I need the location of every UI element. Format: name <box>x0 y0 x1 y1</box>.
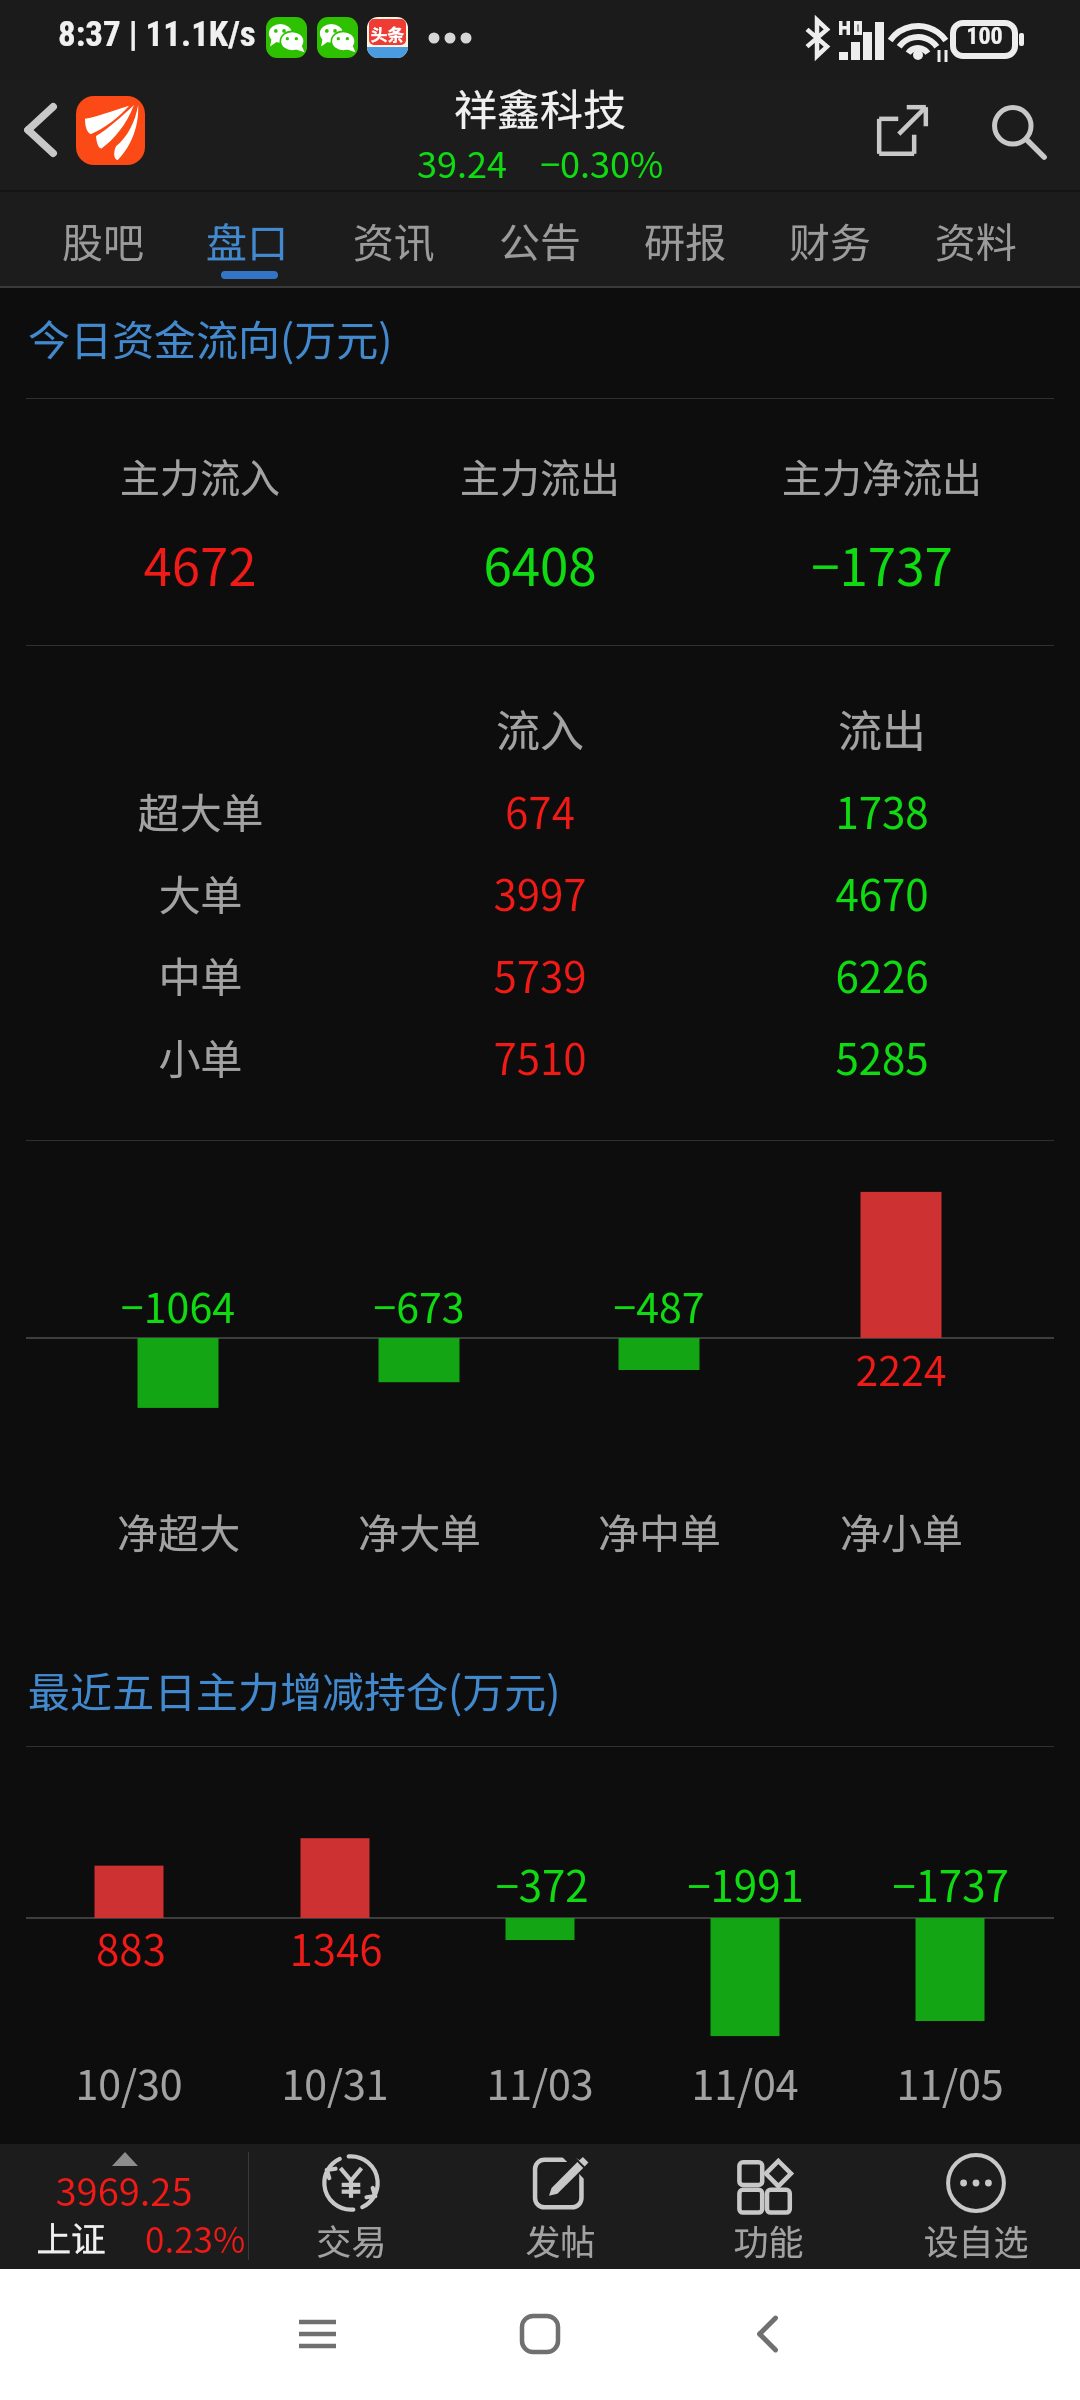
staticText: 研报 <box>644 210 726 269</box>
staticText: 8:37 | 11.1K/s <box>58 14 256 55</box>
staticText: −1991 <box>687 1853 804 1914</box>
staticText: −673 <box>373 1275 465 1334</box>
button[interactable] <box>247 2144 455 2269</box>
staticText: 祥鑫科技 <box>454 76 626 138</box>
button[interactable]: Home <box>487 2289 592 2379</box>
button[interactable] <box>0 2144 248 2269</box>
button[interactable]: 财务 <box>760 192 900 287</box>
staticText: 主力流入 <box>120 447 280 505</box>
staticText: 最近五日主力增减持仓(万元) <box>28 1659 561 1720</box>
button[interactable]: 资讯 <box>324 192 464 287</box>
staticText: 11/05 <box>896 2052 1004 2111</box>
staticText: −487 <box>613 1275 705 1334</box>
staticText: 100 <box>966 22 1003 50</box>
staticText: 1346 <box>289 1917 383 1978</box>
staticText: 39.24 <box>417 136 507 178</box>
staticText: 883 <box>96 1917 166 1978</box>
staticText: 674 <box>505 780 575 841</box>
button[interactable]: 资料 <box>906 192 1046 287</box>
staticText: 主力流出 <box>460 447 620 505</box>
button[interactable] <box>456 2144 664 2269</box>
staticText: 资料 <box>935 210 1017 269</box>
staticText: 净超大 <box>117 1501 240 1560</box>
staticText: 净中单 <box>598 1501 721 1560</box>
staticText: 10/31 <box>281 2052 389 2111</box>
staticText: 5739 <box>493 944 587 1005</box>
staticText: 2224 <box>855 1338 947 1397</box>
staticText: 3969.25 <box>55 2162 193 2217</box>
staticText: 11/03 <box>486 2052 594 2111</box>
staticText: 11/04 <box>691 2052 799 2111</box>
staticText: 流入 <box>496 696 584 760</box>
staticText: −1064 <box>121 1275 235 1334</box>
staticText: 1738 <box>835 780 929 841</box>
staticText: 交易 <box>316 2214 387 2265</box>
staticText: 超大单 <box>137 780 264 841</box>
button[interactable]: Back <box>2 74 78 186</box>
staticText: −1737 <box>892 1853 1009 1914</box>
staticText: 上证 <box>36 2211 107 2262</box>
staticText: 5285 <box>835 1026 929 1087</box>
staticText: 股吧 <box>62 210 144 269</box>
staticText: 小单 <box>158 1026 243 1087</box>
staticText: −0.30% <box>540 136 664 178</box>
staticText: 主力净流出 <box>782 447 982 505</box>
staticText: 7510 <box>493 1026 587 1087</box>
staticText: 6226 <box>835 944 929 1005</box>
staticText: 公告 <box>499 210 581 269</box>
staticText: 头条 <box>370 21 405 46</box>
button[interactable]: Back <box>715 2289 820 2379</box>
staticText: 0.23% <box>145 2212 246 2263</box>
staticText: 6408 <box>483 527 597 601</box>
staticText: 发帖 <box>525 2214 596 2265</box>
staticText: −372 <box>495 1853 589 1914</box>
staticText: 盘口 <box>206 210 288 269</box>
button[interactable] <box>872 2144 1080 2269</box>
button[interactable] <box>664 2144 872 2269</box>
button[interactable]: 股吧 <box>33 192 173 287</box>
staticText: 设自选 <box>923 2214 1029 2265</box>
staticText: 4672 <box>143 527 257 601</box>
staticText: 功能 <box>733 2214 804 2265</box>
button[interactable]: Recents <box>265 2289 370 2379</box>
staticText: 大单 <box>158 862 243 923</box>
staticText: 资讯 <box>353 210 435 269</box>
staticText: 净小单 <box>840 1501 963 1560</box>
staticText: 净大单 <box>358 1501 481 1560</box>
button[interactable]: 研报 <box>615 192 755 287</box>
staticText: 中单 <box>158 944 243 1005</box>
staticText: 3997 <box>493 862 587 923</box>
staticText: −1737 <box>811 527 953 601</box>
staticText: 财务 <box>789 210 871 269</box>
staticText: 4670 <box>835 862 929 923</box>
button[interactable]: Search <box>968 75 1068 187</box>
button[interactable]: 公告 <box>470 192 610 287</box>
staticText: 流出 <box>838 696 926 760</box>
button[interactable]: 盘口 <box>177 192 317 287</box>
button[interactable]: Share <box>852 74 952 186</box>
staticText: 今日资金流向(万元) <box>28 307 393 368</box>
button[interactable]: App logo <box>76 96 145 165</box>
staticText: 10/30 <box>75 2052 183 2111</box>
